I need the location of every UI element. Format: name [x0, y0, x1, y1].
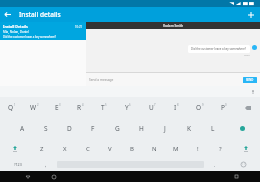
button[interactable]: V: [99, 139, 121, 158]
staticText: 2: [37, 103, 39, 107]
staticText: O: [196, 103, 202, 112]
staticText: 4: [82, 103, 84, 107]
button[interactable]: Recents: [230, 171, 242, 182]
staticText: B: [130, 145, 134, 153]
button[interactable]: Emoji: [226, 158, 260, 171]
staticText: R: [77, 103, 82, 112]
staticText: Q: [8, 103, 14, 112]
button[interactable]: L: [201, 118, 225, 139]
staticText: S: [44, 124, 48, 133]
button[interactable]: D: [57, 118, 81, 139]
staticText: ?: [219, 145, 222, 153]
staticText: D: [67, 124, 72, 133]
staticText: Install details: [19, 10, 61, 19]
button[interactable]: W: [23, 97, 46, 118]
staticText: 0: [225, 103, 227, 107]
button[interactable]: Back: [22, 171, 34, 182]
button[interactable]: ,: [35, 158, 57, 171]
button[interactable]: ?: [209, 139, 231, 158]
button[interactable]: Home: [48, 171, 60, 182]
staticText: M: [173, 145, 179, 153]
button[interactable]: E: [46, 97, 69, 118]
staticText: 9: [202, 103, 204, 107]
button[interactable]: S: [34, 118, 57, 139]
staticText: E: [55, 103, 59, 112]
staticText: 6: [129, 103, 131, 107]
staticText: Did the customer leave a key somewhere?: [191, 47, 247, 51]
button[interactable]: I: [164, 97, 188, 118]
staticText: X: [63, 145, 67, 153]
button[interactable]: O: [188, 97, 212, 118]
staticText: T: [101, 103, 105, 112]
staticText: Z: [40, 145, 44, 153]
staticText: V: [108, 145, 112, 153]
button[interactable]: F: [81, 118, 105, 139]
staticText: J: [164, 124, 166, 133]
button[interactable]: !: [187, 139, 209, 158]
button[interactable]: Z: [30, 139, 53, 158]
staticText: 10:21: [75, 25, 83, 29]
staticText: 7: [154, 103, 156, 107]
staticText: F: [91, 124, 95, 133]
staticText: H: [139, 124, 144, 133]
staticText: 10:21: [244, 54, 250, 57]
button[interactable]: Backspace: [236, 97, 260, 118]
staticText: ,: [45, 162, 47, 168]
staticText: C: [86, 145, 90, 153]
staticText: G: [115, 124, 120, 133]
staticText: Send a message: [89, 78, 114, 82]
button[interactable]: B: [121, 139, 143, 158]
button[interactable]: Back: [0, 7, 15, 22]
button[interactable]: C: [76, 139, 99, 158]
staticText: Install Details: [3, 24, 28, 29]
button[interactable]: Install Details: [0, 22, 86, 35]
button[interactable]: SEND: [243, 77, 257, 83]
button[interactable]: J: [153, 118, 177, 139]
button[interactable]: Y: [116, 97, 140, 118]
staticText: L: [211, 124, 215, 133]
button[interactable]: ?123: [0, 158, 35, 171]
button[interactable]: Did the customer leave a key somewhere?: [188, 45, 250, 53]
button[interactable]: Shift: [0, 139, 30, 158]
staticText: W: [30, 103, 37, 112]
button[interactable]: Q: [0, 97, 23, 118]
button[interactable]: A: [11, 118, 34, 139]
button[interactable]: N: [143, 139, 165, 158]
staticText: ?123: [14, 162, 22, 167]
staticText: 5: [105, 103, 107, 107]
button[interactable]: T: [92, 97, 116, 118]
staticText: U: [149, 103, 154, 112]
staticText: P: [221, 103, 225, 112]
staticText: K: [187, 124, 192, 133]
button[interactable]: K: [177, 118, 201, 139]
button[interactable]: Send a message: [89, 78, 243, 82]
button[interactable]: Voice input: [246, 86, 260, 97]
staticText: 1: [14, 103, 16, 107]
staticText: I: [174, 103, 177, 112]
button[interactable]: M: [165, 139, 187, 158]
staticText: Radam Smith: [163, 24, 184, 28]
staticText: SEND: [246, 78, 254, 82]
staticText: .: [214, 162, 216, 168]
staticText: Did the customer leave a key somewhere?: [3, 35, 56, 39]
staticText: Y: [125, 103, 129, 112]
button[interactable]: H: [129, 118, 153, 139]
staticText: A: [20, 124, 25, 133]
staticText: !: [197, 145, 199, 153]
button[interactable]: U: [140, 97, 164, 118]
button[interactable]: P: [212, 97, 236, 118]
button[interactable]: R: [69, 97, 92, 118]
button[interactable]: Add: [243, 7, 258, 22]
staticText: Mia, Nolan, Daniel: [3, 30, 29, 34]
staticText: N: [152, 145, 157, 153]
button[interactable]: Enter: [225, 118, 260, 139]
button[interactable]: Shift: [231, 139, 260, 158]
button[interactable]: G: [105, 118, 129, 139]
staticText: 8: [177, 103, 179, 107]
button[interactable]: X: [53, 139, 76, 158]
